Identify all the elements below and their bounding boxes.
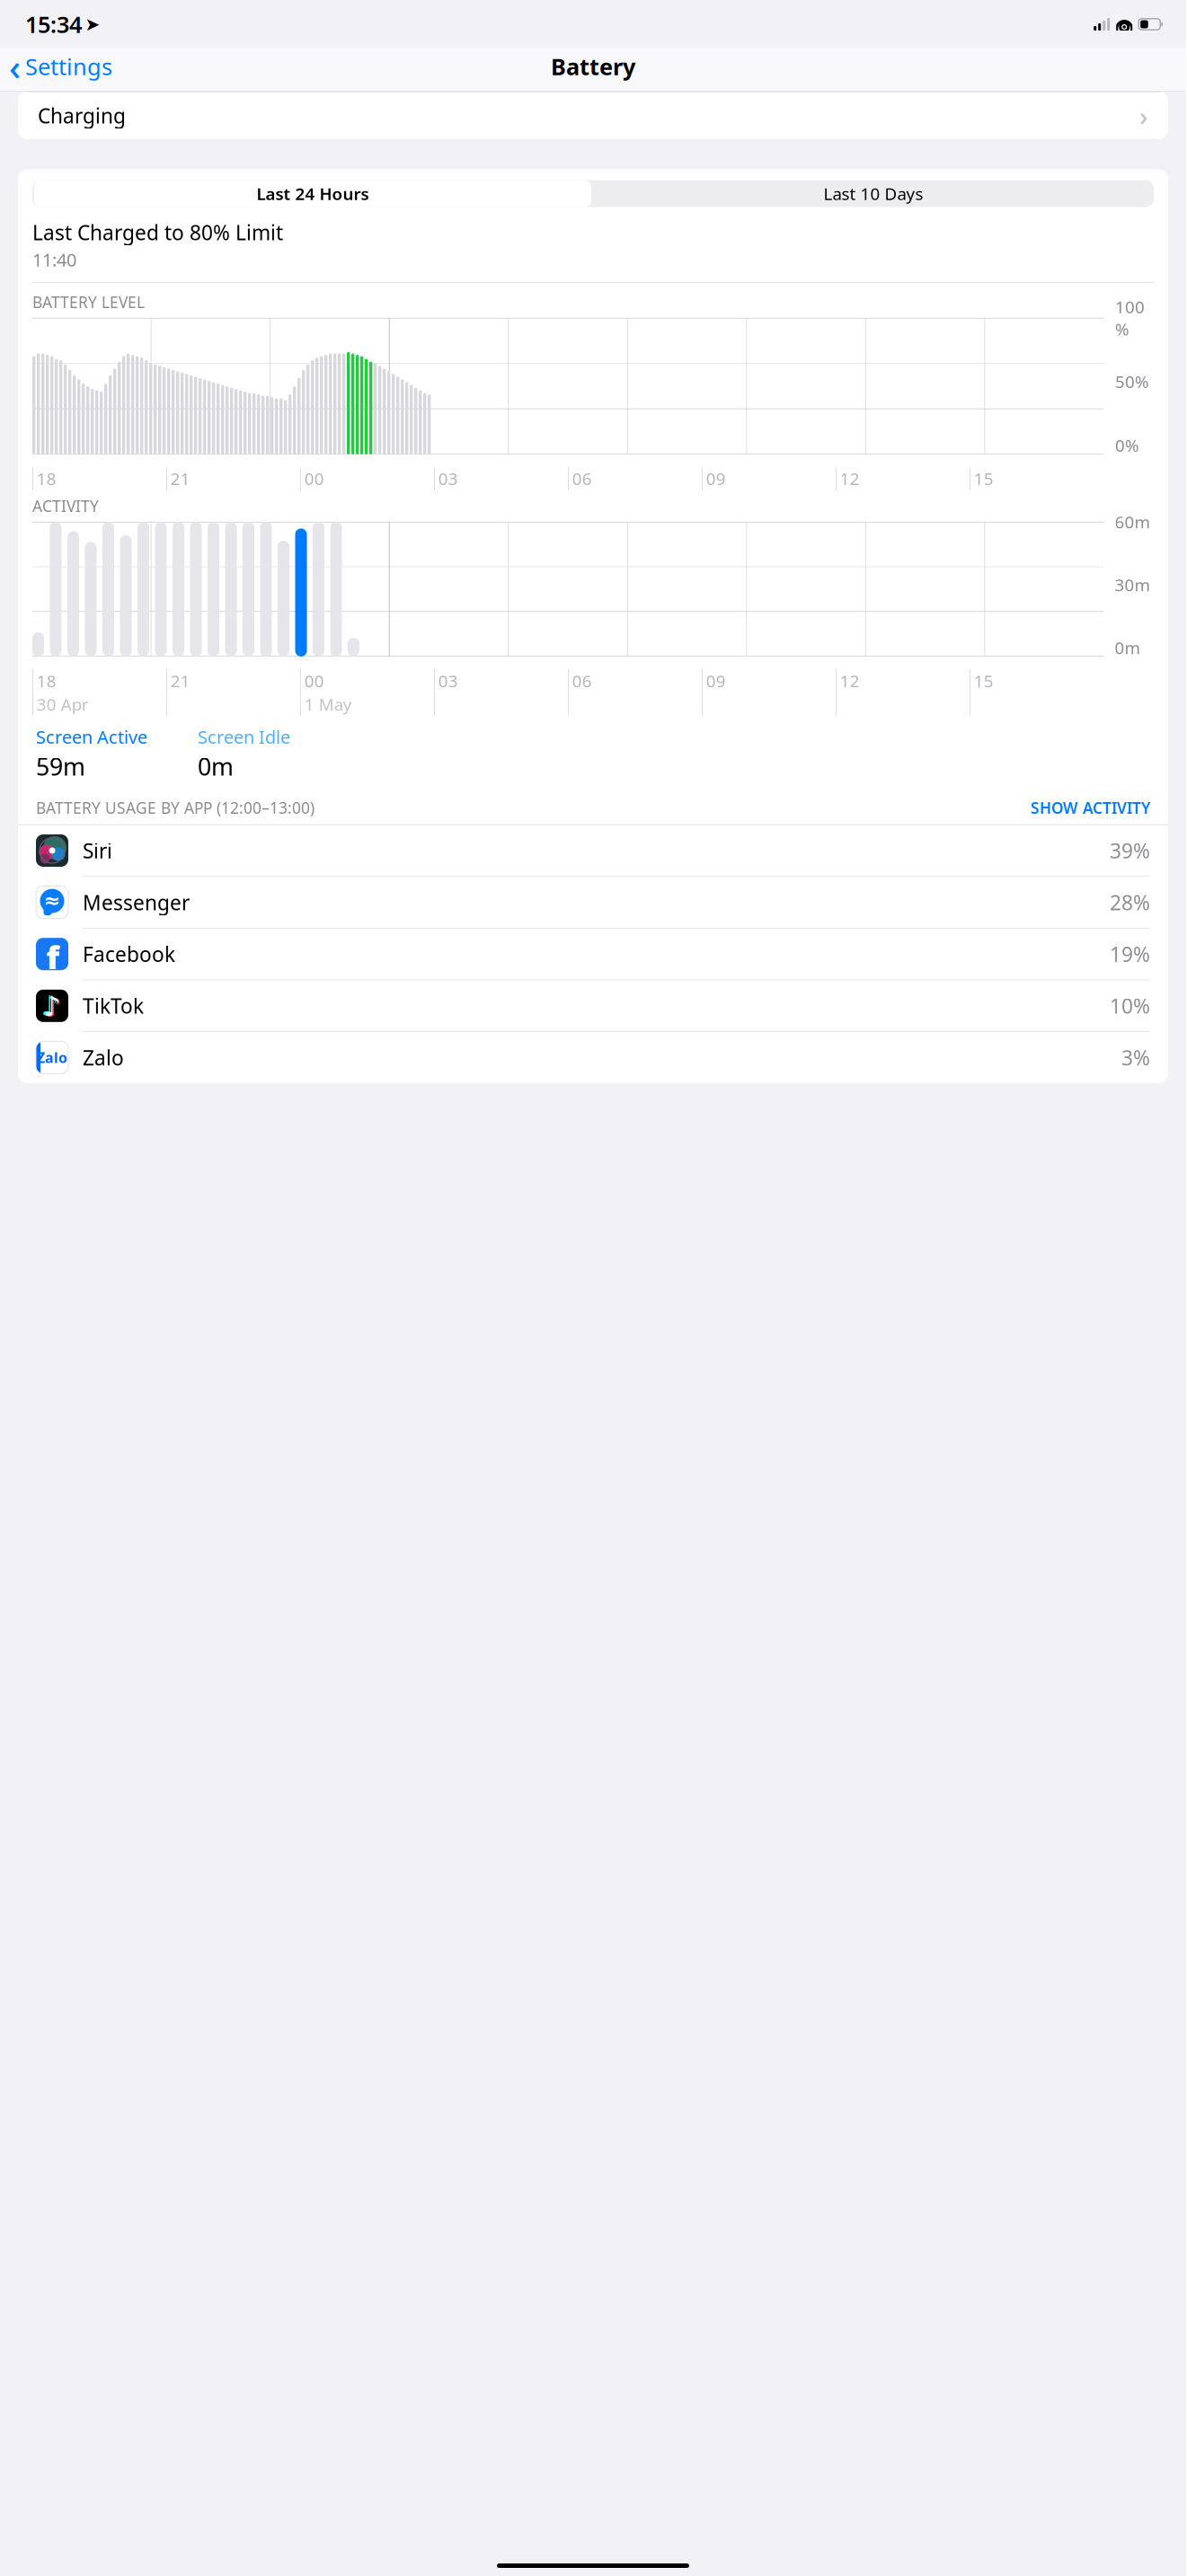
staticText: Facebook (83, 940, 175, 968)
staticText: 0m (198, 750, 234, 782)
staticText: 12 (840, 670, 860, 692)
staticText: › (1139, 98, 1148, 133)
staticText: Messenger (83, 889, 190, 916)
staticText: 30 Apr (37, 693, 89, 715)
staticText: ➤ (85, 14, 100, 34)
staticText: 03 (438, 468, 458, 490)
staticText: 00 (304, 670, 324, 692)
staticText: 15 (974, 670, 994, 692)
staticText: 50% (1115, 371, 1149, 393)
staticText: 0m (1115, 636, 1140, 659)
staticText: 09 (706, 670, 726, 692)
staticText: Zalo (37, 1048, 67, 1067)
staticText: 15 (974, 468, 994, 490)
button[interactable]: ♪ (18, 980, 1168, 1032)
staticText: 18 (37, 670, 56, 692)
button[interactable]: Last 10 Days (593, 180, 1154, 207)
staticText: 12 (840, 468, 860, 490)
staticText: TikTok (83, 992, 144, 1019)
staticText: Last Charged to 80% Limit (32, 219, 283, 246)
staticText: 59m (36, 750, 85, 782)
staticText: 30m (1115, 573, 1150, 596)
staticText: 03 (438, 670, 458, 692)
staticText: 06 (572, 468, 592, 490)
staticText: 60m (1115, 511, 1150, 533)
staticText: Battery (551, 51, 635, 82)
staticText: Last 24 Hours (257, 183, 369, 205)
staticText: 06 (572, 670, 592, 692)
staticText: 18 (37, 468, 56, 490)
staticText: 0% (1115, 434, 1139, 457)
staticText: 09 (706, 468, 726, 490)
staticText: ♪ (44, 992, 62, 1023)
staticText: 1 May (304, 693, 352, 715)
staticText: f (46, 935, 60, 978)
button[interactable]: Zalo (18, 1032, 1168, 1083)
staticText: Siri (83, 837, 112, 864)
staticText: BATTERY LEVEL (32, 292, 145, 312)
staticText: Charging (38, 102, 126, 129)
staticText: ‹ (9, 43, 21, 90)
staticText: ♪ (41, 990, 59, 1021)
staticText: 19% (1110, 940, 1150, 968)
staticText: SHOW ACTIVITY (1031, 798, 1150, 818)
staticText: Zalo (83, 1044, 124, 1071)
button[interactable]: ‹ (0, 37, 112, 96)
staticText: 100% (1115, 296, 1145, 340)
staticText: 11:40 (32, 248, 76, 272)
button[interactable]: ≈ (18, 877, 1168, 928)
staticText: 00 (304, 468, 324, 490)
button[interactable]: Siri (18, 825, 1168, 877)
staticText: Last 10 Days (824, 183, 923, 205)
staticText: 3% (1121, 1044, 1150, 1071)
staticText: 15:34 (25, 9, 82, 39)
staticText: ACTIVITY (32, 496, 99, 516)
button[interactable]: Charging (18, 92, 1168, 139)
button[interactable]: SHOW ACTIVITY (1031, 798, 1150, 818)
staticText: ≈ (44, 889, 61, 912)
staticText: 21 (171, 670, 190, 692)
staticText: 39% (1110, 837, 1150, 864)
staticText: 28% (1110, 889, 1150, 916)
staticText: Screen Idle (198, 725, 290, 749)
staticText: Settings (25, 51, 112, 82)
button[interactable]: Last 24 Hours (32, 178, 593, 209)
staticText: BATTERY USAGE BY APP (12:00–13:00) (36, 798, 314, 818)
staticText: 10% (1110, 992, 1150, 1019)
staticText: Screen Active (36, 725, 147, 749)
button[interactable]: f (18, 928, 1168, 980)
staticText: 21 (171, 468, 190, 490)
staticText: ♪ (43, 991, 61, 1022)
